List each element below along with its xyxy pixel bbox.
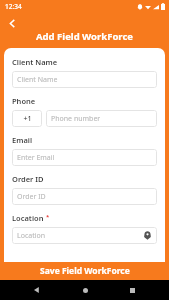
button[interactable]: Location <box>12 227 157 244</box>
button[interactable]: Home <box>74 280 96 300</box>
button[interactable]: Order ID <box>12 188 157 205</box>
button[interactable]: Back <box>3 14 21 32</box>
staticText: Phone <box>12 96 36 106</box>
button[interactable]: Save Field WorkForce <box>0 262 169 280</box>
button[interactable]: +1 <box>12 110 42 127</box>
staticText: Save Field WorkForce <box>40 265 130 277</box>
button[interactable]: Recents <box>121 280 143 300</box>
staticText: * <box>46 213 50 221</box>
button[interactable]: Back <box>26 280 48 300</box>
staticText: Add Field WorkForce <box>36 30 133 43</box>
staticText: Location <box>12 213 44 223</box>
button[interactable]: Client Name <box>12 71 157 88</box>
staticText: 12:34 <box>5 2 22 11</box>
staticText: Enter Email <box>17 153 55 163</box>
staticText: Client Name <box>12 57 58 67</box>
staticText: Phone number <box>51 114 101 124</box>
staticText: Order ID <box>17 192 46 202</box>
staticText: Client Name <box>17 75 58 85</box>
staticText: Location <box>17 231 46 241</box>
button[interactable]: Enter Email <box>12 149 157 166</box>
button[interactable]: Phone number <box>46 110 157 127</box>
staticText: +1 <box>23 114 32 124</box>
staticText: Email <box>12 135 33 145</box>
staticText: Order ID <box>12 174 44 184</box>
